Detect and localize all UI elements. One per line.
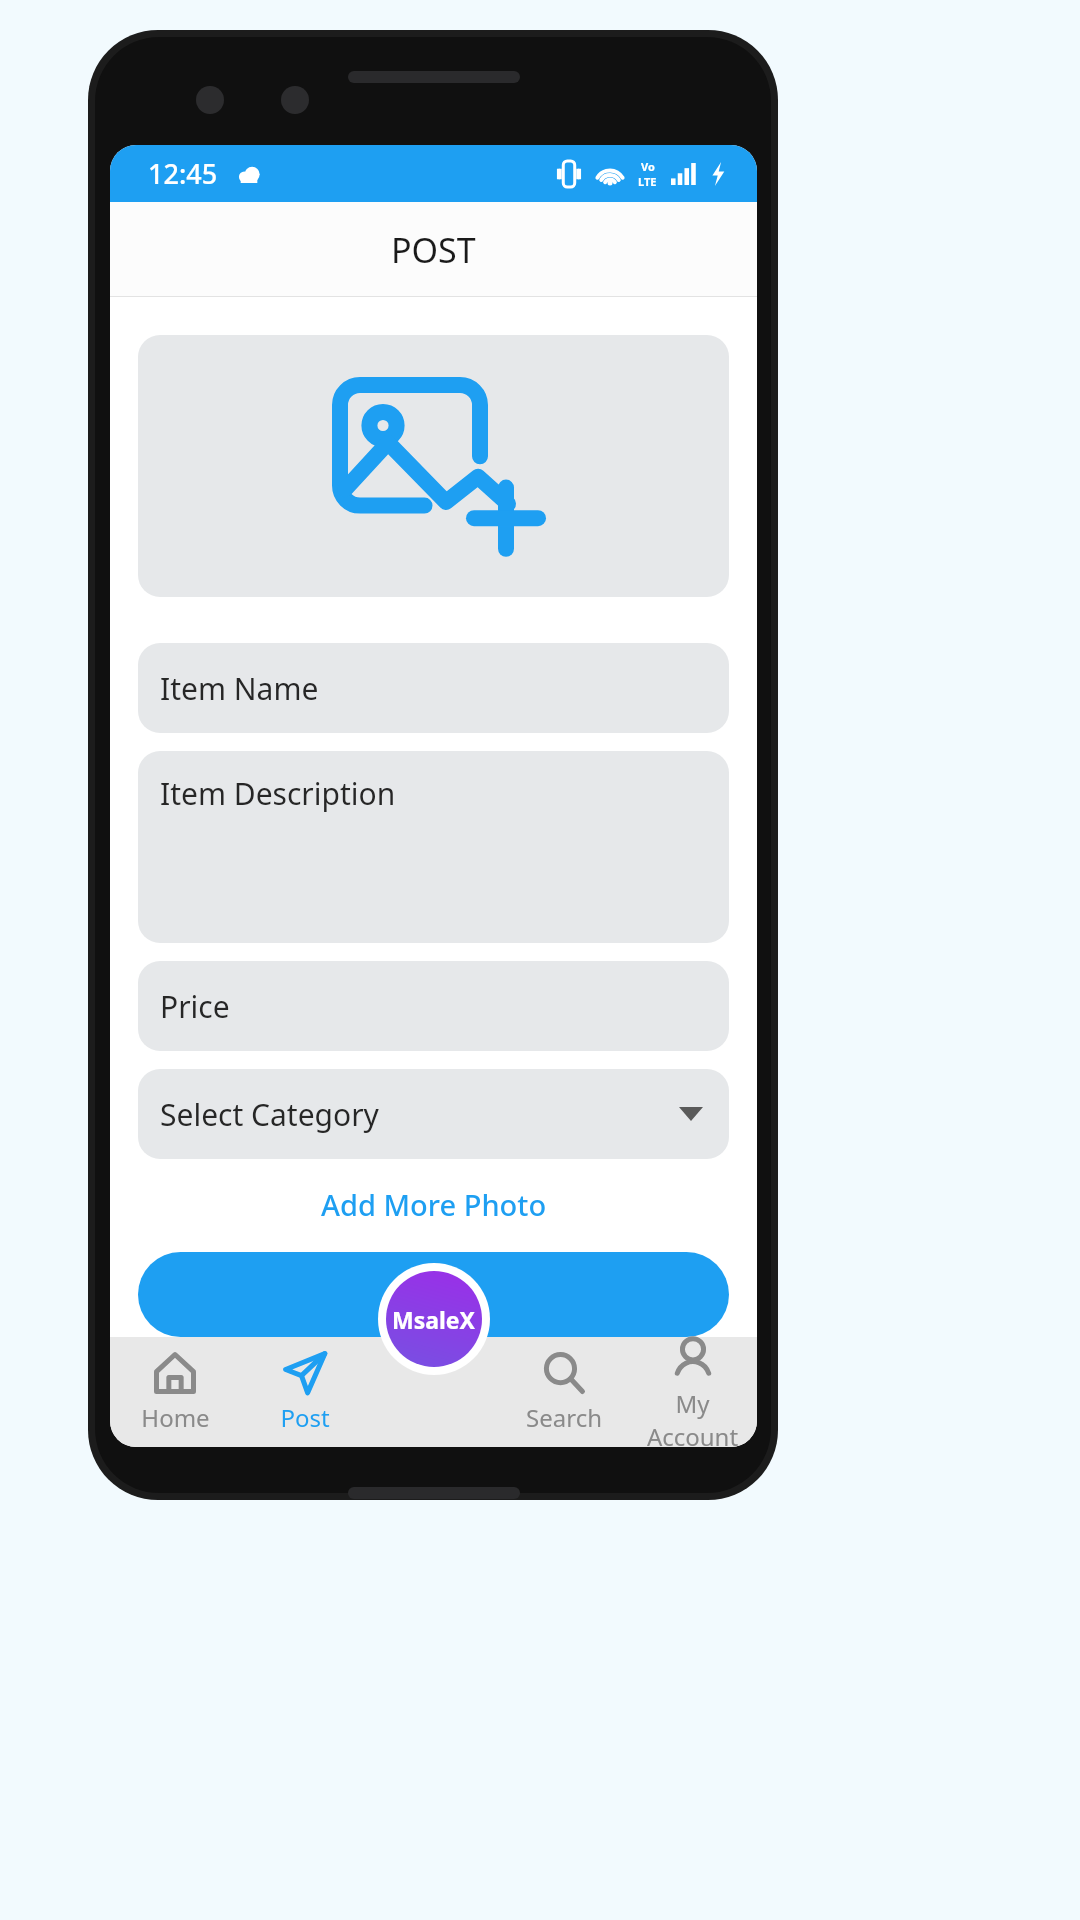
button[interactable]: Add photo: [138, 335, 729, 597]
staticText: 12:45: [148, 155, 218, 192]
button[interactable]: POST: [138, 1252, 729, 1337]
button[interactable]: Home: [110, 1337, 240, 1447]
button[interactable]: My Account: [628, 1337, 757, 1447]
staticText: Item Name: [160, 668, 319, 709]
staticText: Item Description: [160, 773, 396, 814]
staticText: Home: [141, 1401, 210, 1434]
staticText: Post: [280, 1401, 330, 1434]
staticText: MsaleX: [392, 1304, 476, 1335]
button[interactable]: Item Description: [138, 751, 729, 943]
staticText: Add More Photo: [321, 1185, 547, 1224]
button[interactable]: Item Name: [138, 643, 729, 733]
staticText: POST: [395, 1274, 473, 1316]
button[interactable]: Price: [138, 961, 729, 1051]
staticText: POST: [391, 227, 476, 273]
staticText: My Account: [628, 1387, 757, 1447]
staticText: Price: [160, 986, 230, 1027]
staticText: LTE: [638, 174, 657, 189]
button[interactable]: Post: [240, 1337, 370, 1447]
staticText: Select Category: [160, 1094, 379, 1135]
button[interactable]: Select Category: [138, 1069, 729, 1159]
staticText: Search: [526, 1401, 602, 1434]
button[interactable]: Add More Photo: [110, 1185, 757, 1224]
button[interactable]: MsaleX: [378, 1263, 490, 1375]
staticText: Vo: [641, 159, 655, 174]
button[interactable]: Search: [499, 1337, 628, 1447]
